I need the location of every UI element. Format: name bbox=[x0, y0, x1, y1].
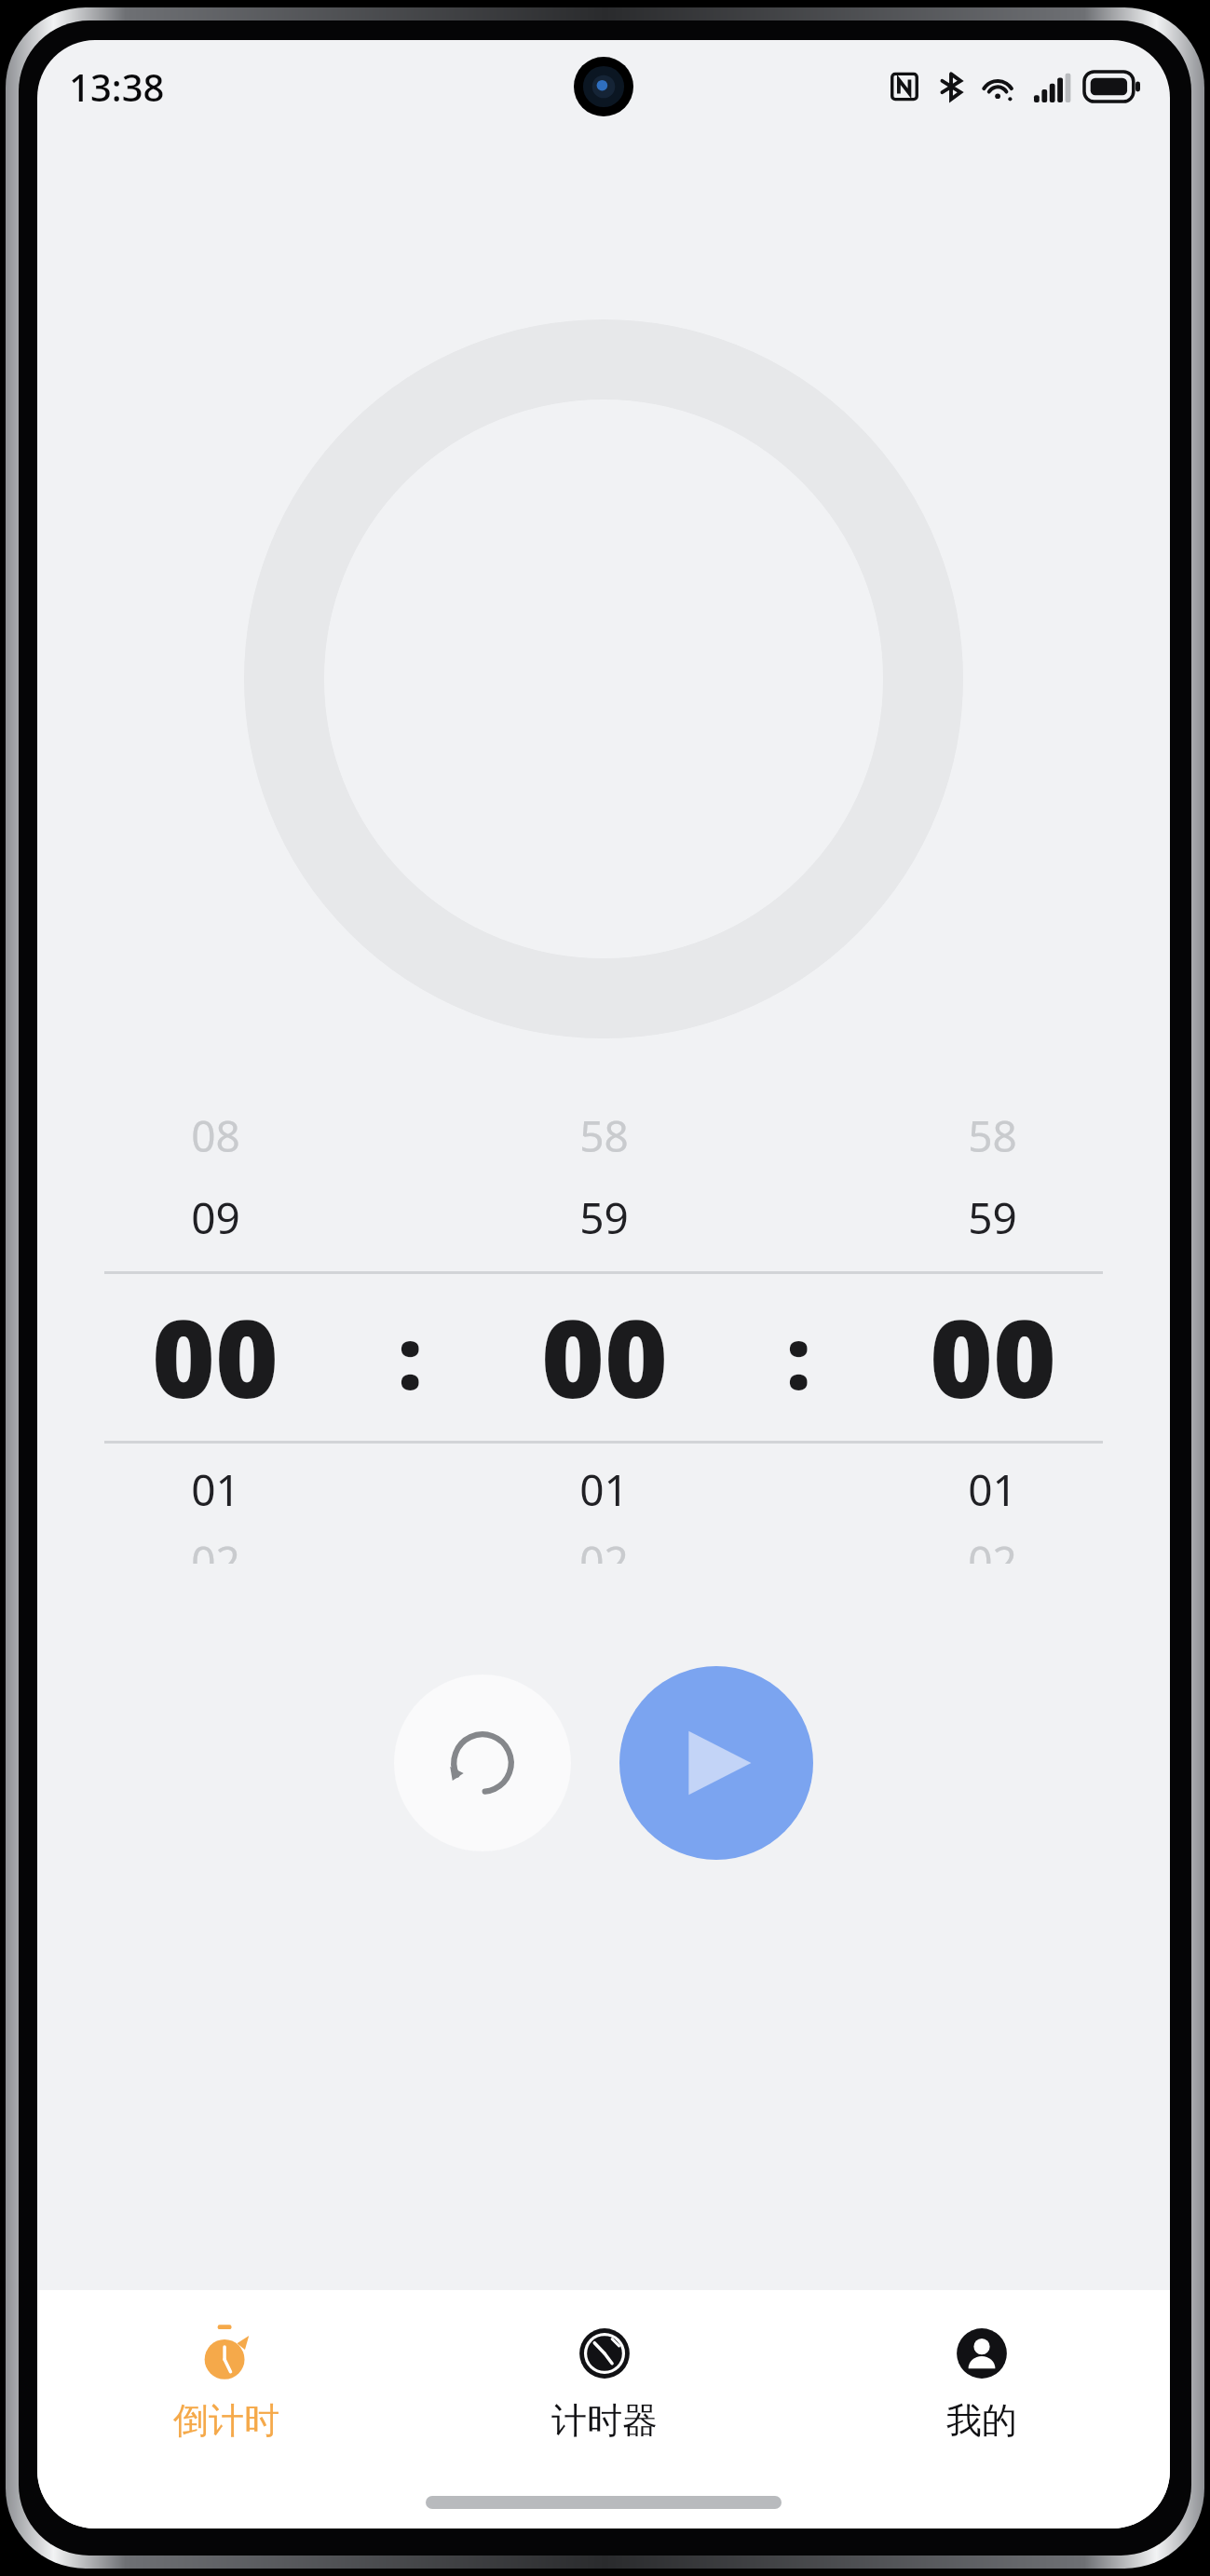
button[interactable]: 倒计时 bbox=[37, 2290, 415, 2476]
staticText: 02 bbox=[191, 1532, 240, 1564]
staticText: 58 bbox=[579, 1106, 629, 1165]
button[interactable]: 59 bbox=[427, 1173, 782, 1262]
staticText: 02 bbox=[968, 1532, 1017, 1564]
staticText: 09 bbox=[191, 1188, 240, 1247]
staticText: : bbox=[398, 1298, 423, 1415]
button[interactable]: 59 bbox=[815, 1173, 1170, 1262]
staticText: 59 bbox=[579, 1188, 629, 1247]
staticText: 01 bbox=[968, 1460, 1017, 1519]
staticText: 02 bbox=[579, 1532, 629, 1564]
button[interactable]: 我的 bbox=[793, 2290, 1170, 2476]
button[interactable]: 01 bbox=[37, 1446, 393, 1532]
staticText: 00 bbox=[541, 1282, 668, 1430]
staticText: 08 bbox=[191, 1106, 240, 1165]
staticText: 01 bbox=[191, 1460, 240, 1519]
button[interactable]: 58 bbox=[427, 1098, 782, 1173]
button[interactable]: 09 bbox=[37, 1173, 393, 1262]
button[interactable]: 00 bbox=[37, 1271, 1170, 1441]
button[interactable]: Start bbox=[619, 1666, 813, 1860]
staticText: 01 bbox=[579, 1460, 629, 1519]
staticText: 我的 bbox=[946, 2398, 1017, 2443]
button[interactable]: 02 bbox=[37, 1532, 393, 1564]
staticText: 倒计时 bbox=[173, 2398, 279, 2443]
staticText: 00 bbox=[930, 1282, 1056, 1430]
staticText: 00 bbox=[152, 1282, 279, 1430]
staticText: 59 bbox=[968, 1188, 1017, 1247]
button[interactable]: 计时器 bbox=[415, 2290, 793, 2476]
button[interactable]: Reset bbox=[394, 1674, 571, 1851]
button[interactable]: 58 bbox=[815, 1098, 1170, 1173]
button[interactable]: 08 bbox=[37, 1098, 393, 1173]
staticText: : bbox=[786, 1298, 811, 1415]
button[interactable]: 02 bbox=[427, 1532, 782, 1564]
button[interactable]: 01 bbox=[815, 1446, 1170, 1532]
button[interactable]: 01 bbox=[427, 1446, 782, 1532]
button[interactable]: 02 bbox=[815, 1532, 1170, 1564]
staticText: 13:38 bbox=[69, 61, 165, 112]
staticText: 58 bbox=[968, 1106, 1017, 1165]
staticText: 计时器 bbox=[551, 2398, 658, 2443]
